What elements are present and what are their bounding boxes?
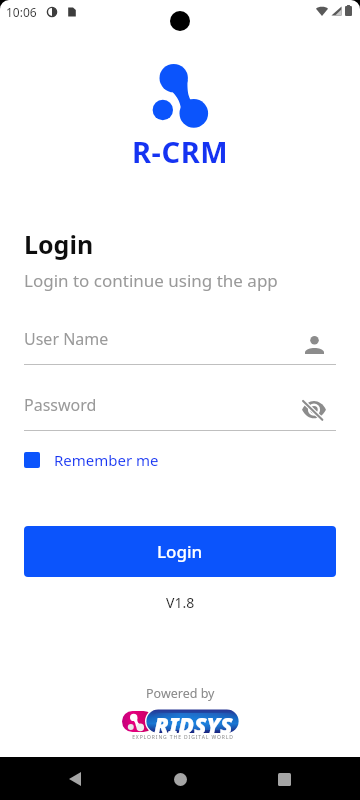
staticText: Login — [157, 540, 203, 563]
staticText: Remember me — [54, 450, 159, 470]
staticText: Login — [24, 227, 94, 261]
staticText: R-CRM — [132, 132, 229, 171]
button[interactable]: Remember me — [24, 450, 159, 470]
button[interactable]: Back — [62, 766, 88, 792]
button[interactable]: Login — [24, 526, 336, 577]
staticText: EXPLORING THE DIGITAL WORLD — [132, 734, 234, 741]
staticText: Powered by — [146, 685, 215, 702]
staticText: 10:06 — [6, 4, 37, 20]
other: User — [305, 336, 324, 354]
staticText: RIDSYS — [154, 709, 233, 740]
staticText: V1.8 — [166, 593, 195, 612]
other: Show password — [301, 400, 327, 422]
button[interactable]: Password — [24, 394, 336, 431]
staticText: User Name — [24, 328, 305, 350]
button[interactable]: Home — [167, 766, 193, 792]
button[interactable]: User Name — [24, 328, 336, 365]
button[interactable]: Recent apps — [271, 766, 297, 792]
staticText: Password — [24, 394, 301, 416]
staticText: Login to continue using the app — [24, 269, 278, 292]
